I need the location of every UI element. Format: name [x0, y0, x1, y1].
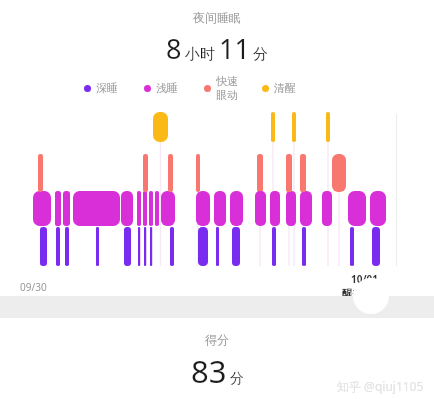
staticText: 分 — [230, 370, 244, 388]
staticText: 83 — [191, 350, 227, 392]
staticText: 眼动 — [216, 88, 238, 102]
staticText: 快速 — [216, 74, 238, 88]
staticText: 浅睡 — [156, 81, 178, 95]
staticText: 得分 — [205, 332, 229, 347]
staticText: 分 — [253, 45, 268, 64]
staticText: 深睡 — [96, 81, 118, 95]
button[interactable]: 浅睡 — [144, 81, 178, 95]
staticText: 小时 — [185, 45, 215, 64]
button[interactable]: 清醒 — [262, 81, 296, 95]
button[interactable]: Detail — [353, 278, 389, 314]
staticText: 09/30 — [20, 280, 47, 294]
button[interactable]: 深睡 — [84, 81, 118, 95]
staticText: 夜间睡眠 — [0, 10, 434, 25]
staticText: 10/01 — [351, 272, 379, 286]
staticText: 11 — [219, 30, 250, 67]
staticText: 知乎 @qiuj1105 — [337, 378, 424, 394]
staticText: 醒来07:36 — [342, 286, 388, 296]
staticText: 清醒 — [274, 81, 296, 95]
button[interactable]: 快速 — [204, 74, 238, 102]
staticText: 8 — [166, 30, 182, 67]
